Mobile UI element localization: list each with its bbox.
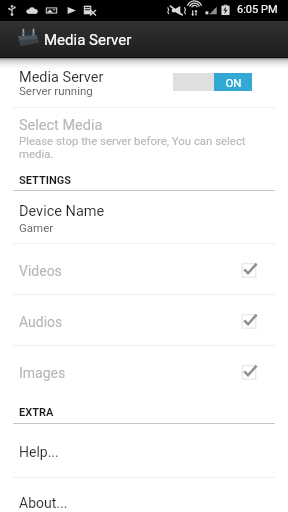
staticText: Audios — [19, 314, 63, 330]
staticText: Device Name — [19, 203, 105, 220]
staticText: Help... — [19, 444, 59, 460]
button[interactable]: Select Media — [0, 108, 288, 168]
button[interactable]: Toggle media server — [173, 73, 252, 91]
staticText: SETTINGS — [19, 174, 71, 187]
button[interactable]: Images — [0, 346, 288, 396]
button[interactable]: Help... — [0, 427, 288, 477]
staticText: 6:05 PM — [237, 3, 278, 16]
staticText: Server running — [19, 84, 93, 97]
staticText: Media Server — [44, 31, 132, 49]
button[interactable]: About... — [0, 478, 288, 512]
button[interactable]: Media Server — [0, 58, 288, 107]
staticText: Videos — [19, 263, 62, 279]
staticText: Media Server — [19, 69, 104, 86]
staticText: ON — [225, 76, 242, 89]
staticText: Please stop the server before, You can s… — [19, 134, 252, 160]
button[interactable]: Device Name — [0, 192, 288, 243]
staticText: About... — [19, 495, 68, 511]
staticText: Images — [19, 365, 66, 381]
button[interactable]: Videos — [0, 244, 288, 294]
button[interactable]: Audios — [0, 295, 288, 345]
staticText: EXTRA — [19, 406, 54, 419]
staticText: Select Media — [19, 117, 103, 134]
staticText: Gamer — [19, 221, 54, 234]
